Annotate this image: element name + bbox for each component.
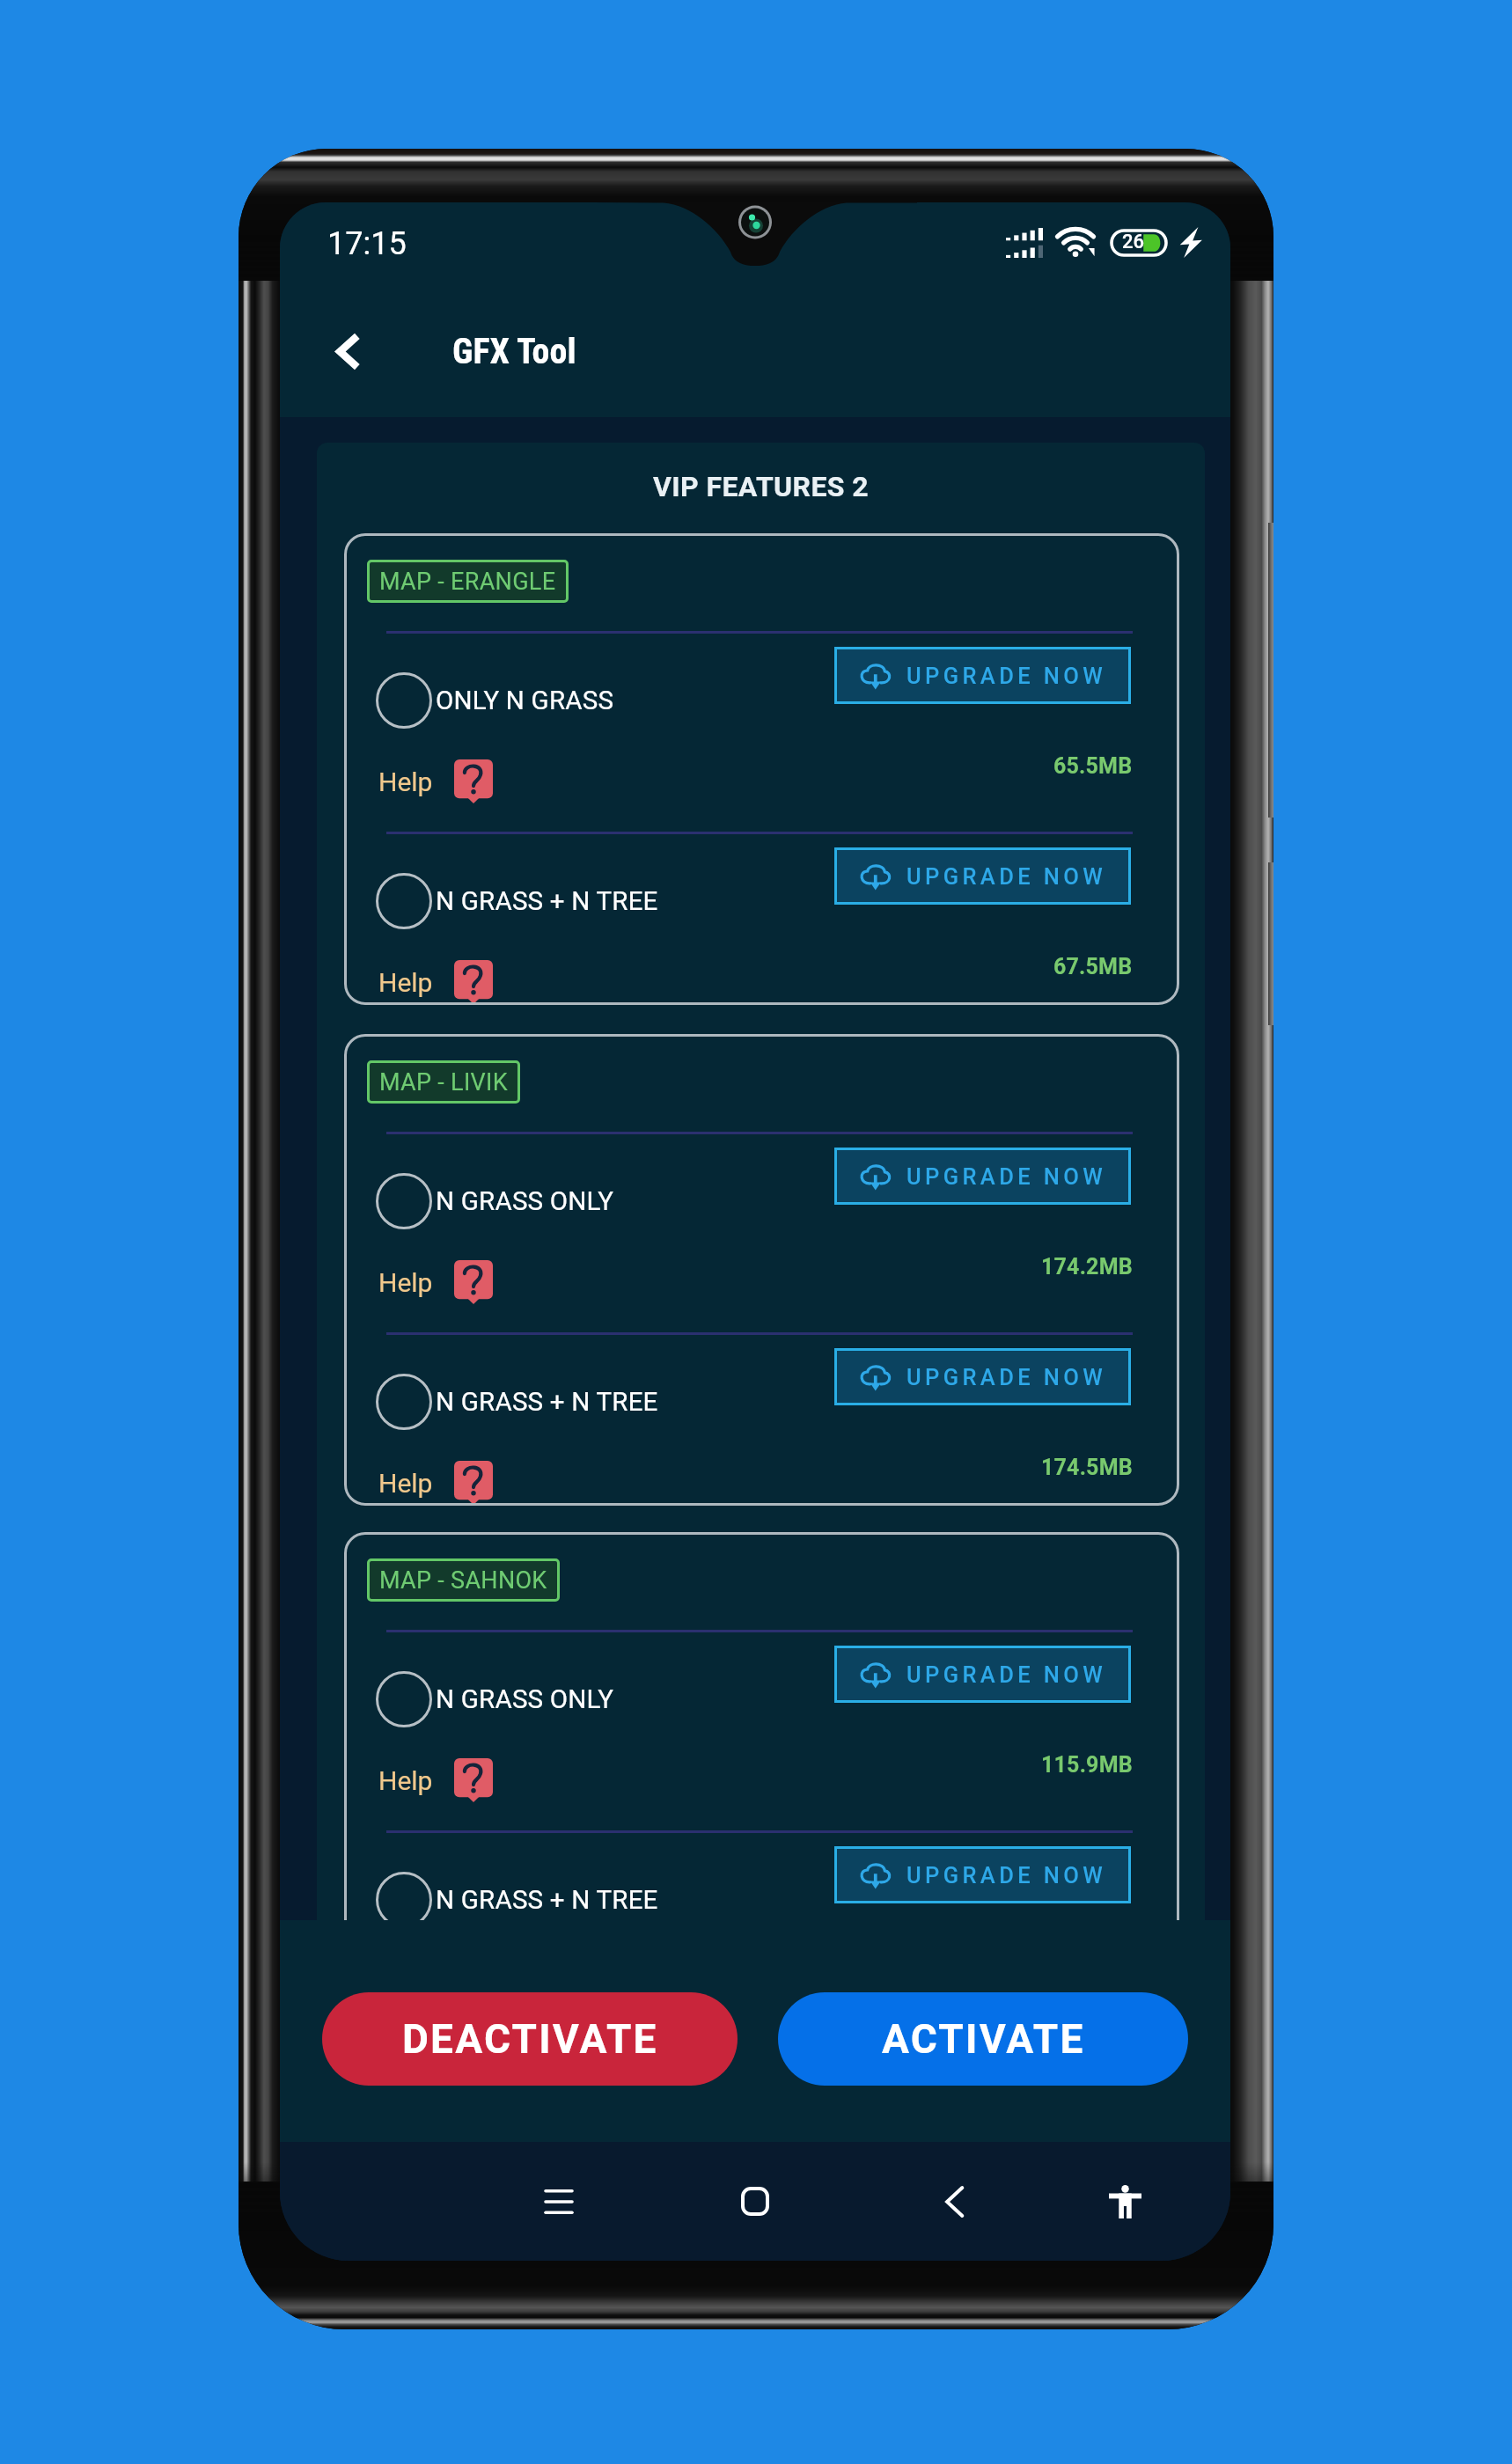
- staticText: VIP FEATURES 2: [317, 470, 1205, 503]
- button[interactable]: Back: [297, 286, 398, 417]
- button[interactable]: UPGRADE NOW: [834, 1646, 1131, 1703]
- staticText: 67.5MB: [1053, 954, 1133, 979]
- button[interactable]: Accessibility: [1073, 2142, 1177, 2261]
- staticText: N GRASS + N TREE: [436, 886, 658, 917]
- button[interactable]: Help: [377, 1458, 493, 1507]
- button[interactable]: Help: [377, 957, 493, 1007]
- button[interactable]: Help: [377, 757, 493, 806]
- button[interactable]: UPGRADE NOW: [834, 1846, 1131, 1903]
- staticText: UPGRADE NOW: [906, 863, 1107, 890]
- button[interactable]: ONLY N GRASS: [376, 673, 614, 728]
- staticText: Help: [378, 1267, 433, 1298]
- staticText: Help: [378, 766, 433, 797]
- staticText: 174.2MB: [1041, 1254, 1133, 1280]
- staticText: ACTIVATE: [882, 2015, 1085, 2063]
- staticText: GFX Tool: [452, 331, 576, 372]
- button[interactable]: Back: [902, 2142, 1006, 2261]
- button[interactable]: N GRASS ONLY: [376, 1174, 614, 1228]
- button[interactable]: GFX Tool: [452, 286, 743, 417]
- staticText: UPGRADE NOW: [906, 1661, 1107, 1688]
- staticText: N GRASS ONLY: [436, 1684, 614, 1715]
- staticText: MAP - ERANGLE: [379, 568, 556, 596]
- staticText: 65.5MB: [1053, 753, 1133, 779]
- button[interactable]: N GRASS + N TREE: [376, 1873, 658, 1920]
- staticText: N GRASS + N TREE: [436, 1885, 658, 1916]
- staticText: 26: [1122, 231, 1145, 253]
- button[interactable]: Home: [703, 2142, 807, 2261]
- button[interactable]: UPGRADE NOW: [834, 647, 1131, 704]
- staticText: Help: [378, 967, 433, 998]
- button[interactable]: UPGRADE NOW: [834, 1348, 1131, 1405]
- staticText: ONLY N GRASS: [436, 686, 614, 716]
- staticText: DEACTIVATE: [402, 2015, 658, 2063]
- button[interactable]: ACTIVATE: [778, 1992, 1188, 2086]
- button[interactable]: Help: [377, 1756, 493, 1805]
- staticText: UPGRADE NOW: [906, 1364, 1107, 1390]
- staticText: MAP - SAHNOK: [379, 1566, 547, 1595]
- staticText: 17:15: [327, 225, 407, 262]
- button[interactable]: N GRASS ONLY: [376, 1672, 614, 1727]
- button[interactable]: DEACTIVATE: [322, 1992, 738, 2086]
- staticText: MAP - LIVIK: [379, 1068, 508, 1096]
- staticText: N GRASS + N TREE: [436, 1387, 658, 1418]
- button[interactable]: N GRASS + N TREE: [376, 1375, 658, 1429]
- staticText: UPGRADE NOW: [906, 663, 1107, 689]
- button[interactable]: Help: [377, 1258, 493, 1307]
- button[interactable]: Recent apps: [507, 2142, 611, 2261]
- staticText: UPGRADE NOW: [906, 1862, 1107, 1888]
- staticText: UPGRADE NOW: [906, 1163, 1107, 1190]
- button[interactable]: UPGRADE NOW: [834, 847, 1131, 905]
- button[interactable]: UPGRADE NOW: [834, 1148, 1131, 1205]
- button[interactable]: N GRASS + N TREE: [376, 874, 658, 928]
- staticText: Help: [378, 1468, 433, 1499]
- staticText: N GRASS ONLY: [436, 1186, 614, 1217]
- staticText: 115.9MB: [1041, 1752, 1133, 1778]
- staticText: Help: [378, 1765, 433, 1796]
- staticText: 174.5MB: [1041, 1455, 1133, 1480]
